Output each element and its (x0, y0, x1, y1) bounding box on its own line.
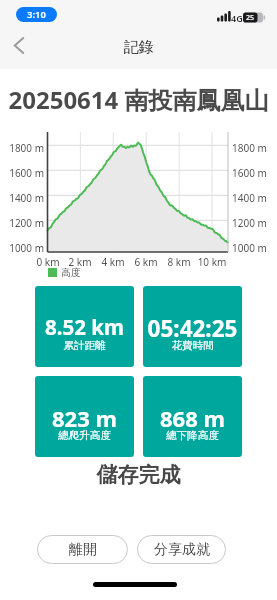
staticText: 1200 m (232, 216, 267, 230)
staticText: 1000 m (232, 241, 267, 255)
staticText: 1200 m (0, 216, 44, 230)
staticText: 1400 m (0, 191, 44, 205)
staticText: 6 km (130, 255, 162, 269)
staticText: 1600 m (232, 166, 267, 180)
button[interactable]: 823 m (35, 376, 134, 457)
staticText: 離開 (69, 541, 97, 559)
button[interactable]: 3:10 (16, 7, 57, 22)
staticText: 1400 m (232, 191, 267, 205)
staticText: 記錄 (0, 38, 277, 57)
staticText: 823 m (35, 403, 134, 433)
staticText: 高度 (61, 266, 81, 279)
button[interactable] (13, 37, 25, 54)
staticText: 儲存完成 (0, 462, 277, 488)
staticText: 累計距離 (35, 339, 134, 352)
staticText: 1000 m (0, 241, 44, 255)
staticText: 分享成就 (154, 541, 210, 559)
staticText: 3:10 (27, 8, 46, 21)
button[interactable]: 離開 (37, 535, 128, 564)
button[interactable]: 05:42:25 (143, 286, 242, 367)
staticText: 2 km (64, 255, 96, 269)
staticText: 4 km (97, 255, 129, 269)
button[interactable]: 868 m (143, 376, 242, 457)
staticText: 10 km (196, 255, 228, 269)
staticText: 05:42:25 (143, 313, 242, 344)
staticText: 0 km (32, 255, 64, 269)
staticText: 20250614 南投南鳳凰山 (0, 83, 277, 116)
staticText: 25 (246, 13, 255, 23)
button[interactable]: 分享成就 (137, 535, 226, 564)
staticText: 1600 m (0, 166, 44, 180)
staticText: 花費時間 (143, 339, 242, 352)
button[interactable]: 8.52 km (35, 286, 134, 367)
staticText: 總爬升高度 (35, 429, 134, 442)
staticText: 8.52 km (35, 313, 134, 341)
staticText: 4G (231, 12, 243, 24)
staticText: 8 km (163, 255, 195, 269)
staticText: 868 m (143, 403, 242, 433)
staticText: 1800 m (232, 141, 267, 155)
staticText: 1800 m (0, 141, 44, 155)
staticText: 總下降高度 (143, 429, 242, 442)
